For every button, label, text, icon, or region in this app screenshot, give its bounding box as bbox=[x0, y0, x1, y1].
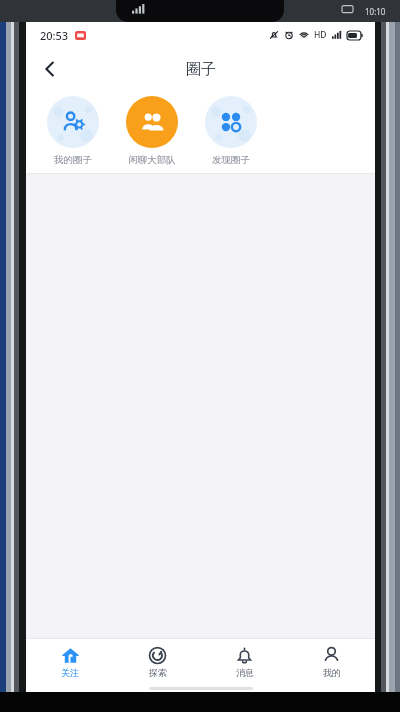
button[interactable]: 探索 bbox=[114, 639, 201, 685]
staticText: 消息 bbox=[236, 667, 254, 678]
button[interactable]: 我的 bbox=[288, 639, 375, 685]
staticText: 探索 bbox=[149, 667, 167, 678]
button[interactable]: 消息 bbox=[201, 639, 288, 685]
staticText: 闲聊大部队 bbox=[128, 154, 176, 166]
staticText: 关注 bbox=[61, 667, 79, 678]
button[interactable]: 发现圈子 bbox=[200, 96, 262, 166]
button[interactable]: 关注 bbox=[26, 639, 114, 685]
staticText: HD bbox=[314, 29, 327, 41]
staticText: 我的 bbox=[323, 667, 341, 678]
button[interactable]: 闲聊大部队 bbox=[121, 96, 183, 166]
button[interactable]: 我的圈子 bbox=[42, 96, 104, 166]
staticText: 20:53 bbox=[40, 28, 69, 43]
staticText: 我的圈子 bbox=[54, 154, 92, 166]
staticText: 圈子 bbox=[186, 60, 216, 79]
staticText: 发现圈子 bbox=[212, 154, 250, 166]
staticText: 10:10 bbox=[365, 6, 386, 17]
button[interactable]: Back bbox=[32, 51, 68, 87]
